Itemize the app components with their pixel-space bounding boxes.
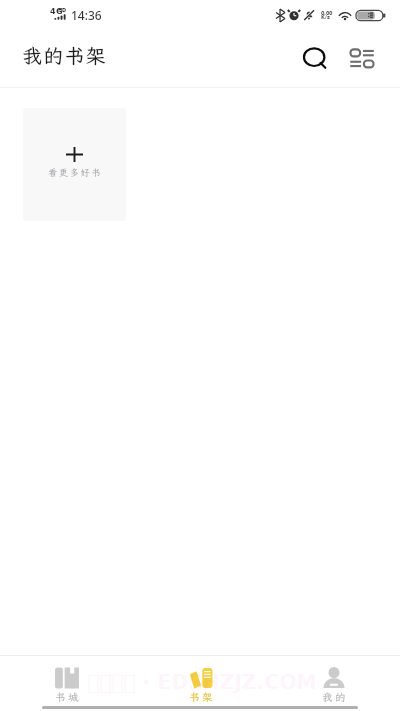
- button[interactable]: Manage books: [340, 37, 384, 81]
- staticText: 14:36: [71, 7, 102, 23]
- button[interactable]: [267, 661, 400, 709]
- button[interactable]: Search: [294, 37, 338, 81]
- button[interactable]: [134, 661, 267, 709]
- button[interactable]: [23, 108, 126, 221]
- button[interactable]: [0, 661, 134, 709]
